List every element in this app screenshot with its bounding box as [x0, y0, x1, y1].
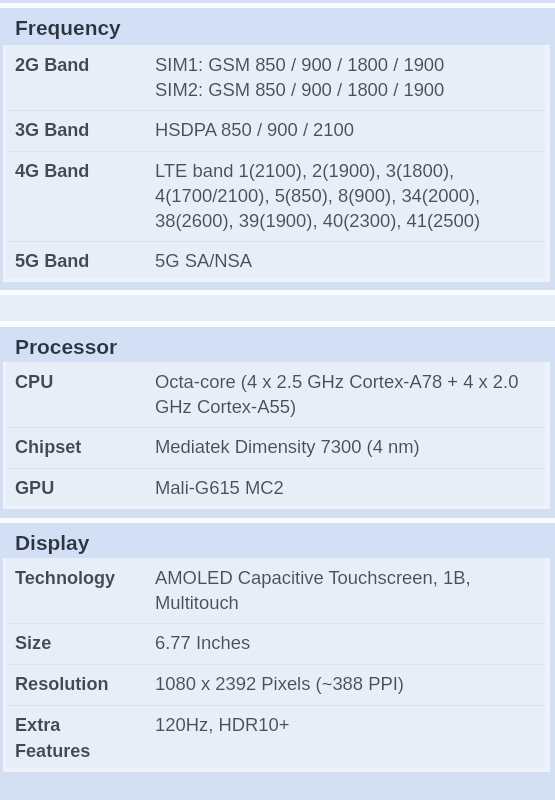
staticText: 4G Band [15, 157, 90, 183]
staticText: Extra Features [15, 711, 91, 763]
button[interactable]: Size [6, 623, 545, 664]
staticText: Mediatek Dimensity 7300 (4 nm) [155, 433, 420, 458]
staticText: Processor [15, 335, 118, 359]
staticText: Technology [15, 564, 116, 590]
staticText: 4(1700/2100), 5(850), 8(900), 34(2000), [155, 182, 481, 207]
staticText: Chipset [15, 433, 82, 459]
staticText: 3G Band [15, 116, 90, 142]
staticText: AMOLED Capacitive Touchscreen, 1B, [155, 564, 471, 589]
staticText: CPU [15, 368, 54, 394]
button[interactable]: Technology [6, 558, 545, 623]
staticText: 5G Band [15, 247, 90, 273]
staticText: Octa-core (4 x 2.5 GHz Cortex-A78 + 4 x … [155, 368, 519, 393]
staticText: GHz Cortex-A55) [155, 393, 297, 418]
staticText: 1080 x 2392 Pixels (~388 PPI) [155, 670, 404, 695]
staticText: Mali-G615 MC2 [155, 474, 284, 499]
button[interactable]: Resolution [6, 664, 545, 705]
button[interactable]: Frequency [0, 8, 555, 45]
staticText: 6.77 Inches [155, 629, 251, 654]
button[interactable]: 5G Band [6, 241, 545, 278]
button[interactable]: Display [0, 523, 555, 558]
staticText: SIM1: GSM 850 / 900 / 1800 / 1900 [155, 51, 445, 76]
button[interactable]: 2G Band [6, 45, 545, 110]
staticText: SIM2: GSM 850 / 900 / 1800 / 1900 [155, 76, 445, 101]
staticText: LTE band 1(2100), 2(1900), 3(1800), [155, 157, 455, 182]
staticText: HSDPA 850 / 900 / 2100 [155, 116, 355, 141]
staticText: 2G Band [15, 51, 90, 77]
staticText: 38(2600), 39(1900), 40(2300), 41(2500) [155, 207, 481, 232]
staticText: Size [15, 629, 52, 655]
staticText: 120Hz, HDR10+ [155, 711, 290, 736]
button[interactable]: Chipset [6, 427, 545, 468]
button[interactable]: 3G Band [6, 110, 545, 151]
staticText: GPU [15, 474, 55, 500]
button[interactable]: Extra Features [6, 705, 545, 768]
staticText: Resolution [15, 670, 109, 696]
button[interactable]: CPU [6, 362, 545, 427]
staticText: Display [15, 531, 90, 555]
staticText: 5G SA/NSA [155, 247, 253, 272]
button[interactable]: Processor [0, 327, 555, 362]
button[interactable]: 4G Band [6, 151, 545, 241]
staticText: Frequency [15, 16, 121, 40]
staticText: Multitouch [155, 589, 239, 614]
button[interactable]: GPU [6, 468, 545, 505]
